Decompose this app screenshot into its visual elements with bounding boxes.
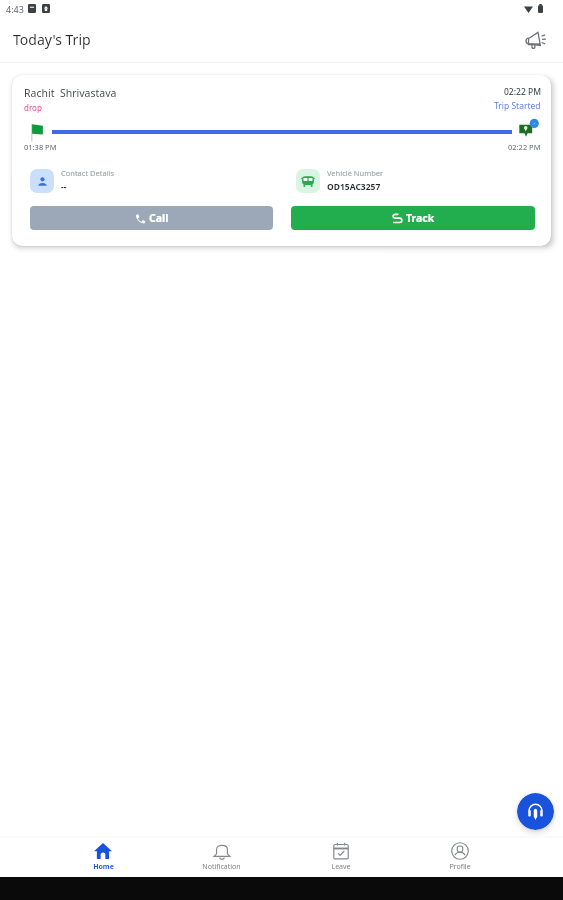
staticText: Notification xyxy=(202,862,241,872)
staticText: -- xyxy=(61,181,67,193)
button[interactable]: Profile xyxy=(400,838,519,872)
staticText: 4:43 xyxy=(6,3,24,15)
button[interactable]: Track xyxy=(291,206,535,230)
button[interactable]: Announcements xyxy=(521,25,551,55)
staticText: Rachit Shrivastava xyxy=(24,86,117,100)
staticText: 01:38 PM xyxy=(24,142,57,152)
button[interactable]: Vehicle Number xyxy=(296,168,384,193)
staticText: Home xyxy=(93,862,114,872)
staticText: Vehicle Number xyxy=(327,168,384,178)
button[interactable]: Notification xyxy=(162,838,281,872)
button[interactable]: Leave xyxy=(281,838,400,872)
staticText: 02:22 PM xyxy=(508,142,541,152)
button[interactable]: Customer support xyxy=(517,793,554,830)
staticText: Call xyxy=(149,211,169,225)
button[interactable]: Contact Details xyxy=(30,168,115,193)
button[interactable]: Home xyxy=(44,838,162,872)
staticText: Contact Details xyxy=(61,168,115,178)
staticText: drop xyxy=(24,102,42,113)
staticText: Trip Started xyxy=(494,100,541,112)
staticText: Profile xyxy=(449,862,471,872)
staticText: Track xyxy=(406,211,435,225)
staticText: Leave xyxy=(331,862,351,872)
staticText: 02:22 PM xyxy=(504,86,541,98)
staticText: Today's Trip xyxy=(13,30,91,49)
staticText: OD15AC3257 xyxy=(327,181,381,193)
button[interactable]: Call xyxy=(30,206,273,230)
